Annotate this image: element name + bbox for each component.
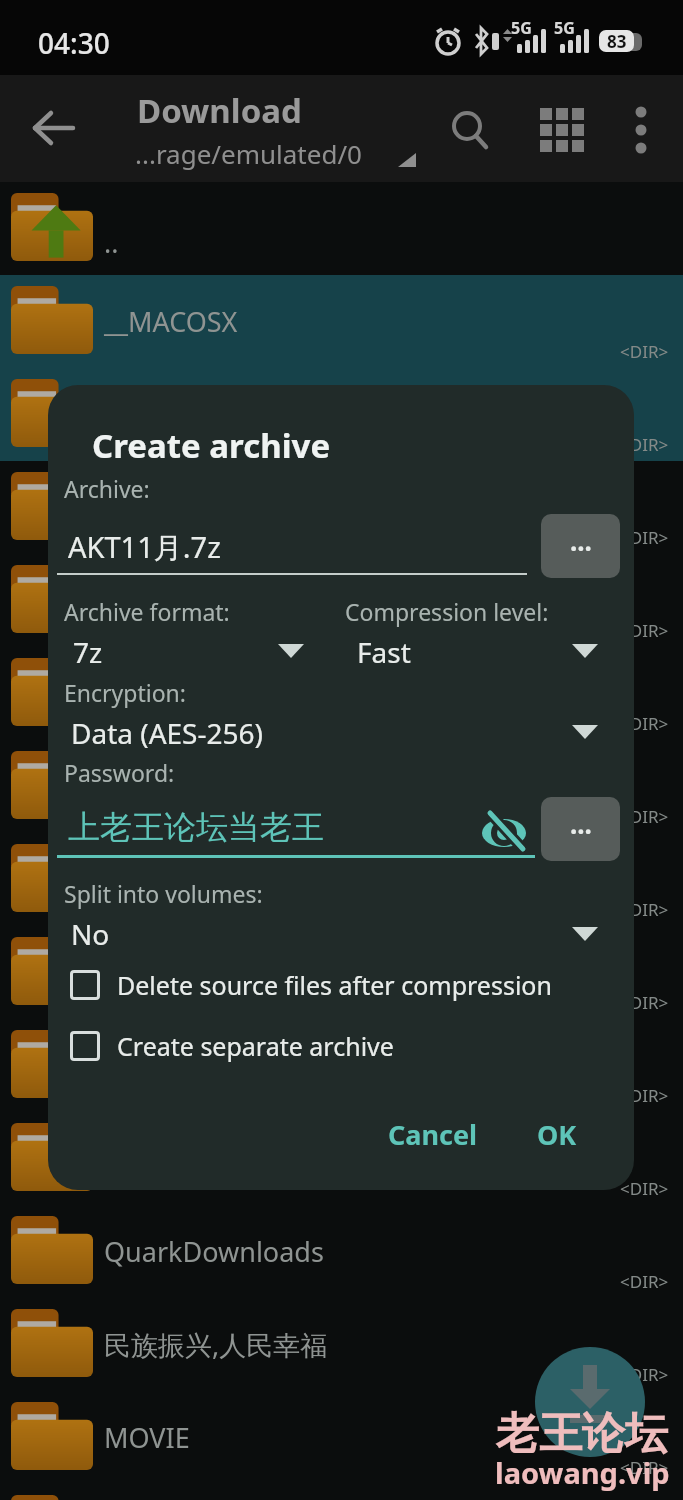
button[interactable]: __MACOSX <box>0 275 683 368</box>
button[interactable] <box>57 803 477 857</box>
button[interactable] <box>57 709 599 755</box>
button[interactable]: <DIR> <box>0 647 683 740</box>
button[interactable] <box>535 1347 645 1457</box>
staticText: .. <box>104 224 119 261</box>
staticText: QuarkDownloads <box>104 1233 324 1270</box>
button[interactable]: <DIR> <box>0 1112 683 1205</box>
button[interactable]: Create separate archive <box>70 1029 394 1063</box>
button[interactable] <box>57 628 305 674</box>
button[interactable] <box>450 110 490 150</box>
staticText: <DIR> <box>620 1084 669 1107</box>
staticText: Compression level: <box>345 596 549 627</box>
button[interactable]: <DIR> <box>0 368 683 461</box>
staticText: <DIR> <box>620 619 669 642</box>
button[interactable]: Cancel <box>388 1116 478 1153</box>
staticText: 老王论坛 <box>496 1407 668 1461</box>
button[interactable]: <DIR> <box>0 554 683 647</box>
staticText: Download <box>137 88 302 133</box>
staticText: <DIR> <box>620 898 669 921</box>
button[interactable] <box>57 911 599 957</box>
staticText: Encryption: <box>64 677 186 708</box>
staticText: Archive format: <box>64 596 230 627</box>
button[interactable]: <DIR> <box>0 926 683 1019</box>
staticText: <DIR> <box>620 712 669 735</box>
staticText: Fast <box>357 633 411 671</box>
staticText: 5G <box>554 17 575 39</box>
staticText: <DIR> <box>620 805 669 828</box>
staticText: 上老王论坛当老王 <box>68 807 324 847</box>
button[interactable]: <DIR> <box>0 461 683 554</box>
staticText: <DIR> <box>620 1270 669 1293</box>
staticText: Split into volumes: <box>64 878 263 909</box>
staticText: <DIR> <box>620 340 669 363</box>
staticText: <DIR> <box>620 1456 669 1479</box>
staticText: No <box>71 915 110 953</box>
staticText: MOVIE <box>104 1419 190 1456</box>
button[interactable]: QuarkDownloads <box>0 1205 683 1298</box>
staticText: ...rage/emulated/0 <box>135 136 362 171</box>
staticText: ... <box>570 523 592 558</box>
staticText: 83 <box>607 30 627 52</box>
button[interactable]: MOVIE <box>0 1391 683 1484</box>
button[interactable]: <DIR> <box>0 740 683 833</box>
staticText: <DIR> <box>620 1177 669 1200</box>
button[interactable] <box>33 110 75 146</box>
staticText: Data (AES-256) <box>71 714 263 752</box>
staticText: Delete source files after compression <box>117 968 552 1002</box>
button[interactable]: <DIR> <box>0 1484 683 1500</box>
staticText: laowang.vip <box>495 1453 670 1492</box>
button[interactable] <box>540 108 584 152</box>
button[interactable]: <DIR> <box>0 1019 683 1112</box>
staticText: __MACOSX <box>104 303 238 340</box>
button[interactable]: OK <box>537 1116 577 1153</box>
staticText: Create archive <box>92 423 331 468</box>
button[interactable] <box>57 523 527 575</box>
button[interactable]: 民族振兴,人民幸福 <box>0 1298 683 1391</box>
button[interactable]: ... <box>541 514 620 578</box>
button[interactable]: .. <box>0 182 683 275</box>
button[interactable]: ... <box>541 797 620 861</box>
staticText: 7z <box>73 633 103 671</box>
staticText: AKT11月.7z <box>68 527 221 567</box>
staticText: Archive: <box>64 473 150 504</box>
staticText: Create separate archive <box>117 1029 394 1063</box>
staticText: 民族振兴,人民幸福 <box>104 1326 328 1363</box>
staticText: ... <box>570 806 592 841</box>
button[interactable]: <DIR> <box>0 833 683 926</box>
staticText: 04:30 <box>38 24 110 62</box>
button[interactable] <box>630 106 652 154</box>
button[interactable] <box>481 811 527 849</box>
button[interactable]: Delete source files after compression <box>70 968 552 1002</box>
button[interactable] <box>341 628 599 674</box>
staticText: 5G <box>511 17 532 39</box>
staticText: <DIR> <box>620 526 669 549</box>
staticText: Password: <box>64 757 175 788</box>
staticText: <DIR> <box>620 433 669 456</box>
staticText: <DIR> <box>620 1363 669 1386</box>
staticText: <DIR> <box>620 991 669 1014</box>
